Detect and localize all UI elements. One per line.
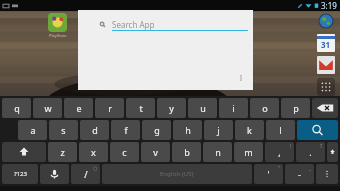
staticText: " bbox=[278, 165, 281, 172]
button[interactable]: , bbox=[265, 142, 294, 162]
button[interactable]: p bbox=[281, 98, 310, 118]
staticText: g bbox=[154, 124, 160, 136]
button[interactable]: q bbox=[2, 98, 31, 118]
button[interactable]: c bbox=[110, 142, 139, 162]
button[interactable]: u bbox=[188, 98, 217, 118]
staticText: b bbox=[184, 146, 190, 158]
staticText: . bbox=[309, 146, 312, 158]
button[interactable]: - bbox=[285, 164, 314, 184]
button[interactable]: More options bbox=[237, 74, 245, 82]
button[interactable]: English (US) bbox=[102, 164, 252, 184]
staticText: t bbox=[139, 102, 143, 114]
staticText: ' bbox=[267, 168, 270, 180]
staticText: l bbox=[279, 124, 282, 136]
staticText: x bbox=[91, 146, 96, 158]
staticText: s bbox=[61, 124, 66, 136]
button[interactable]: h bbox=[173, 120, 202, 140]
staticText: h bbox=[185, 124, 191, 136]
button[interactable]: r bbox=[95, 98, 124, 118]
staticText: 3:19 bbox=[321, 0, 337, 11]
staticText: v bbox=[153, 146, 158, 158]
button[interactable]: j bbox=[204, 120, 233, 140]
button[interactable]: Gmail bbox=[317, 56, 335, 74]
staticText: _ bbox=[309, 165, 312, 172]
button[interactable]: k bbox=[235, 120, 264, 140]
staticText: ○ bbox=[93, 165, 98, 171]
staticText: , bbox=[278, 146, 281, 158]
button[interactable]: Shift bbox=[2, 142, 46, 162]
staticText: ?123 bbox=[14, 170, 27, 178]
button[interactable]: o bbox=[250, 98, 279, 118]
staticText: i bbox=[232, 102, 235, 114]
staticText: r bbox=[108, 102, 112, 114]
button[interactable]: t bbox=[126, 98, 155, 118]
staticText: a bbox=[30, 124, 36, 136]
staticText: n bbox=[215, 146, 221, 158]
staticText: - bbox=[298, 168, 301, 180]
button[interactable]: . bbox=[296, 142, 325, 162]
button[interactable]: Apps bbox=[317, 78, 335, 96]
staticText: English (US) bbox=[160, 170, 194, 178]
button[interactable]: d bbox=[80, 120, 109, 140]
button[interactable]: a bbox=[18, 120, 47, 140]
button[interactable]: Calendar bbox=[317, 34, 335, 52]
button[interactable]: / bbox=[71, 164, 100, 184]
staticText: p bbox=[293, 102, 299, 114]
staticText: 31 bbox=[321, 39, 331, 50]
staticText: j bbox=[217, 124, 220, 136]
button[interactable]: s bbox=[49, 120, 78, 140]
button[interactable]: Search App bbox=[112, 18, 248, 30]
staticText: Search App bbox=[112, 19, 155, 30]
button[interactable]: ?123 bbox=[2, 164, 38, 184]
button[interactable]: n bbox=[203, 142, 232, 162]
button[interactable]: z bbox=[48, 142, 77, 162]
button[interactable]: Search bbox=[297, 120, 338, 140]
button[interactable]: ' bbox=[254, 164, 283, 184]
staticText: u bbox=[200, 102, 206, 114]
button[interactable]: y bbox=[157, 98, 186, 118]
button[interactable]: More symbols bbox=[316, 164, 338, 184]
button[interactable]: Browser bbox=[317, 12, 335, 30]
staticText: ? bbox=[320, 143, 323, 150]
button[interactable]: m bbox=[234, 142, 263, 162]
button[interactable]: i bbox=[219, 98, 248, 118]
button[interactable]: PlayStore bbox=[48, 13, 67, 38]
staticText: e bbox=[76, 102, 82, 114]
button[interactable]: e bbox=[64, 98, 93, 118]
staticText: y bbox=[169, 102, 174, 114]
staticText: / bbox=[84, 168, 88, 180]
button[interactable]: f bbox=[111, 120, 140, 140]
staticText: w bbox=[44, 102, 52, 114]
staticText: k bbox=[247, 124, 252, 136]
staticText: f bbox=[124, 124, 128, 136]
button[interactable]: b bbox=[172, 142, 201, 162]
button[interactable]: Backspace bbox=[312, 98, 338, 118]
button[interactable]: v bbox=[141, 142, 170, 162]
button[interactable]: Voice input bbox=[40, 164, 69, 184]
staticText: PlayStore bbox=[49, 33, 67, 38]
button[interactable]: Shift bbox=[327, 142, 338, 162]
staticText: z bbox=[60, 146, 65, 158]
staticText: d bbox=[92, 124, 98, 136]
button[interactable]: x bbox=[79, 142, 108, 162]
staticText: q bbox=[14, 102, 20, 114]
staticText: m bbox=[244, 146, 253, 158]
staticText: c bbox=[122, 146, 127, 158]
staticText: ! bbox=[290, 143, 292, 150]
button[interactable]: g bbox=[142, 120, 171, 140]
button[interactable]: l bbox=[266, 120, 295, 140]
staticText: o bbox=[262, 102, 268, 114]
button[interactable]: w bbox=[33, 98, 62, 118]
